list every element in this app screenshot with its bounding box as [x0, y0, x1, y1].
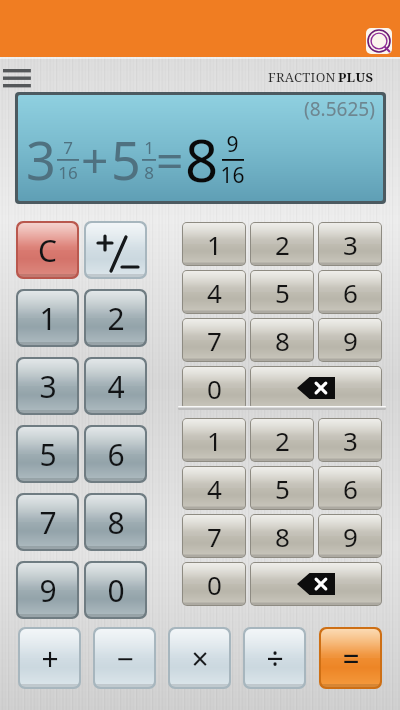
button[interactable]: 5 — [251, 271, 313, 313]
button[interactable] — [86, 223, 145, 277]
staticText: 8 — [275, 323, 290, 358]
button[interactable]: 0 — [183, 563, 245, 605]
staticText: 3 — [343, 423, 358, 458]
staticText: 1 — [39, 298, 57, 339]
staticText: 8 — [275, 519, 290, 554]
staticText: 2 — [275, 423, 290, 458]
staticText: 5 — [39, 434, 57, 475]
button[interactable]: 4 — [183, 271, 245, 313]
button[interactable]: + — [20, 629, 79, 687]
button[interactable]: ÷ — [245, 629, 304, 687]
button[interactable]: 1 — [18, 291, 77, 345]
button[interactable]: 0 — [183, 367, 245, 409]
staticText: − — [116, 638, 134, 679]
staticText: 3 — [26, 124, 56, 195]
button[interactable]: 7 — [183, 319, 245, 361]
button[interactable]: 0 — [86, 563, 145, 617]
staticText: 9 — [39, 570, 57, 611]
staticText: C — [38, 230, 57, 271]
button[interactable]: 4 — [86, 359, 145, 413]
staticText: 2 — [275, 227, 290, 262]
button[interactable]: 7 — [18, 495, 77, 549]
staticText: 16 — [220, 161, 245, 190]
staticText: PLUS — [338, 68, 374, 86]
staticText: 5 — [275, 275, 290, 310]
button[interactable]: 1 — [183, 419, 245, 461]
button[interactable]: Backspace — [251, 563, 381, 605]
staticText: 1 — [207, 423, 222, 458]
staticText: 3 — [343, 227, 358, 262]
staticText: 4 — [207, 275, 222, 310]
staticText: = — [342, 638, 360, 679]
button[interactable]: 6 — [319, 467, 381, 509]
button[interactable]: 6 — [319, 271, 381, 313]
button[interactable]: 2 — [251, 223, 313, 265]
staticText: FRACTION — [268, 68, 336, 86]
button[interactable]: 3 — [319, 223, 381, 265]
button[interactable]: 5 — [251, 467, 313, 509]
button[interactable]: 9 — [319, 515, 381, 557]
button[interactable]: Backspace — [251, 367, 381, 409]
button[interactable]: 7 — [183, 515, 245, 557]
button[interactable]: × — [170, 629, 229, 687]
staticText: + — [81, 127, 109, 192]
staticText: 6 — [107, 434, 125, 475]
staticText: (8.5625) — [304, 96, 375, 122]
staticText: = — [156, 127, 184, 192]
staticText: × — [191, 638, 209, 679]
button[interactable]: 2 — [86, 291, 145, 345]
staticText: 0 — [107, 570, 125, 611]
staticText: 7 — [63, 136, 73, 159]
staticText: 6 — [343, 275, 358, 310]
button[interactable]: 3 — [319, 419, 381, 461]
button[interactable]: 1 — [183, 223, 245, 265]
button[interactable]: = — [321, 629, 380, 687]
staticText: 9 — [226, 130, 239, 159]
staticText: 8 — [144, 161, 154, 184]
staticText: 7 — [207, 519, 222, 554]
staticText: ÷ — [266, 638, 284, 679]
button[interactable]: 5 — [18, 427, 77, 481]
button[interactable]: 9 — [319, 319, 381, 361]
staticText: 9 — [343, 323, 358, 358]
button[interactable]: 9 — [18, 563, 77, 617]
button[interactable]: 4 — [183, 467, 245, 509]
staticText: + — [41, 638, 59, 679]
staticText: 4 — [107, 366, 125, 407]
staticText: 6 — [343, 471, 358, 506]
staticText: 5 — [275, 471, 290, 506]
staticText: 3 — [39, 366, 57, 407]
staticText: 8 — [107, 502, 125, 543]
button[interactable]: 8 — [86, 495, 145, 549]
button[interactable]: 3 — [18, 359, 77, 413]
button[interactable]: 2 — [251, 419, 313, 461]
staticText: 0 — [207, 371, 222, 406]
button[interactable]: 8 — [251, 515, 313, 557]
button[interactable]: − — [95, 629, 154, 687]
staticText: 2 — [107, 298, 125, 339]
staticText: 1 — [207, 227, 222, 262]
staticText: 4 — [207, 471, 222, 506]
button[interactable]: C — [18, 223, 77, 277]
staticText: 1 — [144, 136, 154, 159]
staticText: 7 — [207, 323, 222, 358]
button[interactable]: 6 — [86, 427, 145, 481]
staticText: 9 — [343, 519, 358, 554]
other: Super Circle badge — [366, 28, 392, 54]
staticText: 5 — [111, 124, 141, 195]
staticText: 0 — [207, 567, 222, 602]
staticText: 16 — [58, 161, 78, 184]
button[interactable]: Menu — [2, 66, 36, 88]
staticText: 8 — [185, 120, 219, 199]
button[interactable]: 8 — [251, 319, 313, 361]
staticText: 7 — [39, 502, 57, 543]
